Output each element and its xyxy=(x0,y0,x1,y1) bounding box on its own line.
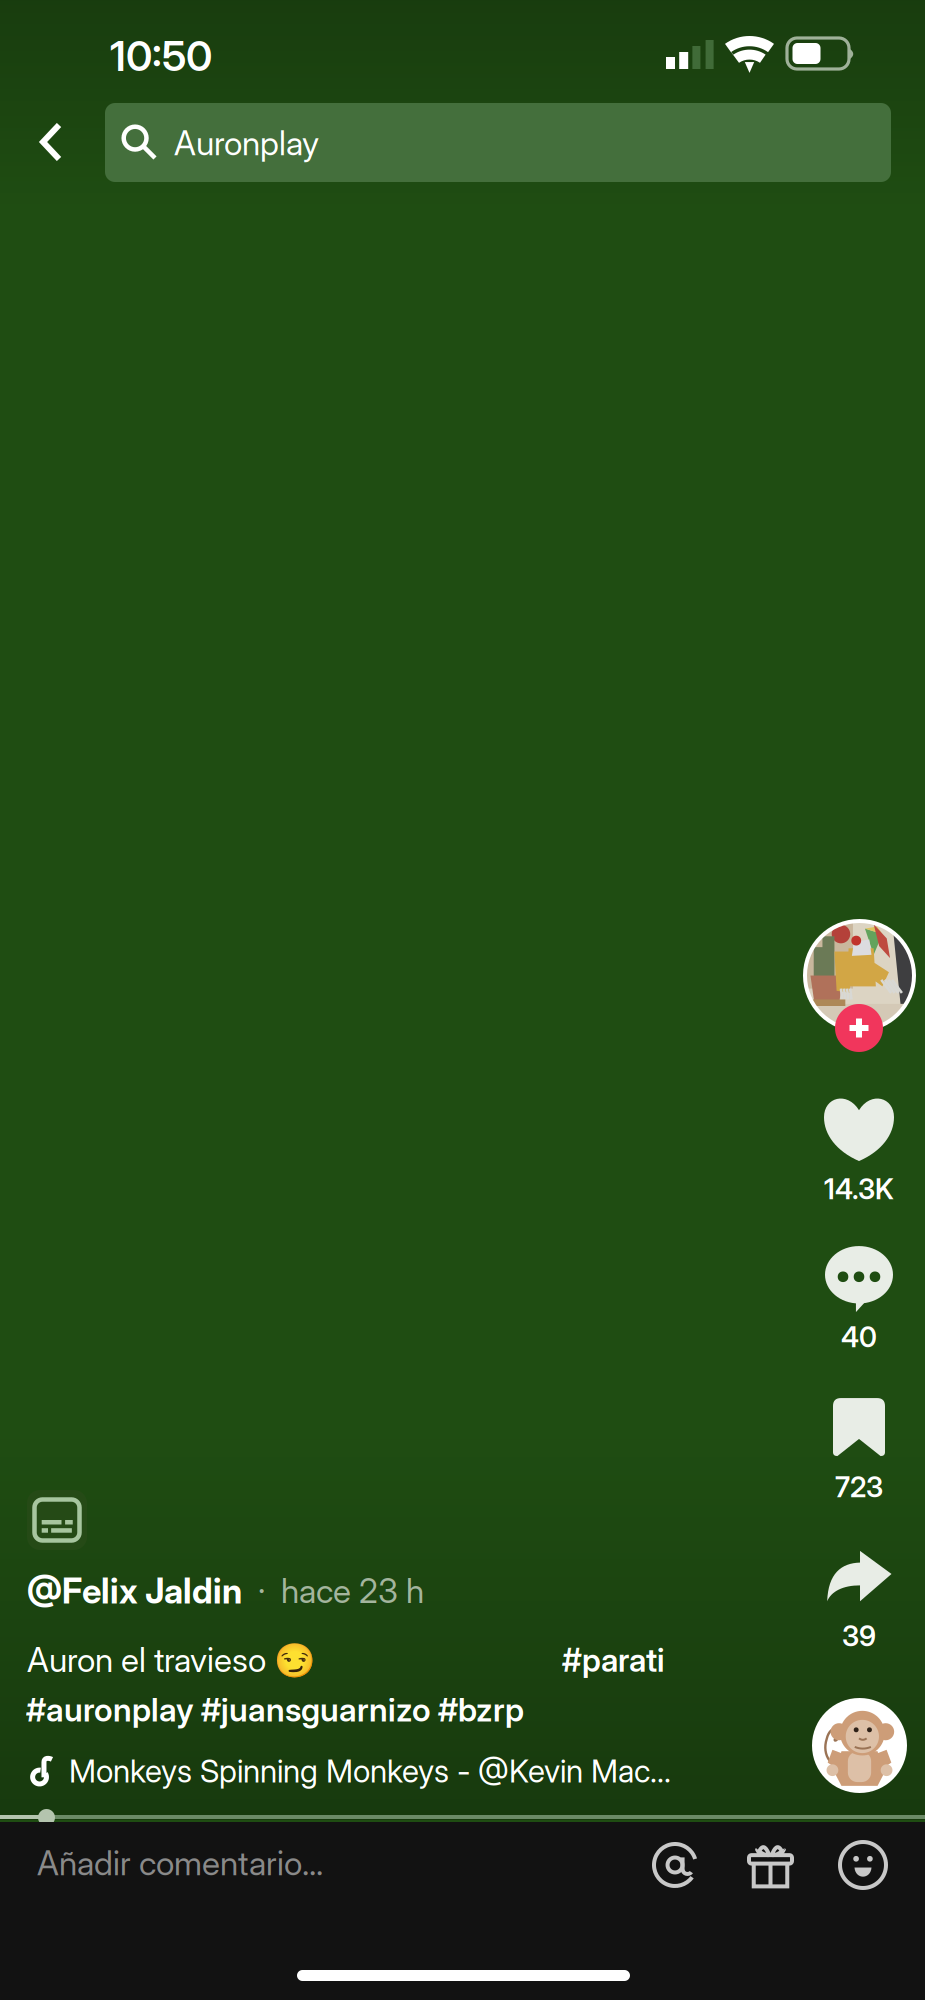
button[interactable]: Comments, 40 xyxy=(794,1250,924,1350)
button[interactable]: Felix Jaldin profile xyxy=(805,921,914,1030)
staticText: Añadir comentario... xyxy=(37,1843,323,1883)
button[interactable]: Saved, 723 xyxy=(794,1402,924,1500)
staticText: #parati xyxy=(562,1641,664,1679)
staticText: · hace 23 h xyxy=(242,1571,424,1611)
button[interactable]: Mention someone xyxy=(652,1842,698,1888)
button[interactable]: #parati xyxy=(562,1641,664,1679)
staticText: #auronplay #juansguarnizo #bzrp xyxy=(26,1690,524,1729)
staticText: Monkeys Spinning Monkeys - @Kevin Mac... xyxy=(69,1752,671,1790)
staticText: 10:50 xyxy=(110,31,212,81)
button[interactable]: Sound: Monkeys Spinning Monkeys xyxy=(812,1698,907,1793)
button[interactable]: Send a gift xyxy=(749,1842,792,1888)
staticText: 723 xyxy=(835,1470,883,1504)
button[interactable]: Sound: Monkeys Spinning Monkeys - @Kevin… xyxy=(32,1752,671,1790)
button[interactable]: @Felix Jaldin, hace 23 h xyxy=(27,1570,424,1612)
staticText: 39 xyxy=(842,1619,876,1653)
staticText: Auron el travieso 😏 xyxy=(27,1640,316,1680)
staticText: 40 xyxy=(841,1320,877,1354)
button[interactable]: Back xyxy=(16,108,84,176)
button[interactable]: #auronplay #juansguarnizo #bzrp xyxy=(26,1690,524,1729)
staticText: @Felix Jaldin xyxy=(27,1570,242,1612)
button[interactable]: Auronplay xyxy=(105,103,891,182)
button[interactable]: Añadir comentario... xyxy=(26,1825,526,1901)
staticText: Auronplay xyxy=(174,123,319,163)
button[interactable]: Subtitles xyxy=(27,1490,87,1550)
button[interactable]: Share, 39 xyxy=(794,1553,924,1649)
staticText: 14.3K xyxy=(824,1172,894,1206)
button[interactable]: Like, 14.3K xyxy=(794,1101,924,1202)
button[interactable]: Emoji xyxy=(840,1842,886,1888)
button[interactable]: Follow xyxy=(835,1004,883,1052)
